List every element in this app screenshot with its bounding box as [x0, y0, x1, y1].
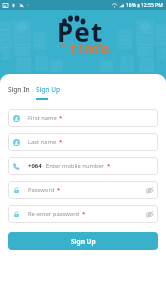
staticText: Enter mobile number — [46, 162, 105, 170]
staticText: * — [107, 162, 111, 170]
staticText: First name — [28, 114, 57, 122]
staticText: 16% — [126, 2, 136, 9]
staticText: Sign Up — [71, 237, 96, 246]
staticText: * — [59, 114, 63, 122]
staticText: Pet — [57, 14, 104, 49]
button[interactable]: +064 — [8, 157, 158, 175]
staticText: * — [57, 186, 61, 194]
staticText: Last name — [28, 138, 57, 146]
button[interactable]: Last name — [8, 133, 158, 151]
button[interactable]: Sign Up — [8, 232, 158, 250]
button[interactable]: Sign In — [0, 84, 34, 102]
button[interactable]: Password — [8, 181, 158, 199]
button[interactable]: Toggle password visibility — [142, 207, 156, 221]
staticText: * — [59, 138, 63, 146]
staticText: Sign In — [8, 85, 30, 94]
button[interactable]: First name — [8, 109, 158, 127]
staticText: 12:55 PM — [141, 2, 163, 9]
button[interactable]: Re-enter password — [8, 205, 158, 223]
staticText: Sign Up — [36, 85, 60, 94]
button[interactable]: Toggle password visibility — [142, 183, 156, 197]
button[interactable]: Sign Up — [34, 84, 68, 100]
staticText: Password — [28, 186, 55, 194]
staticText: +064 — [28, 162, 42, 170]
staticText: Re-enter password — [28, 210, 80, 218]
staticText: time — [70, 38, 111, 58]
staticText: * — [82, 210, 86, 218]
